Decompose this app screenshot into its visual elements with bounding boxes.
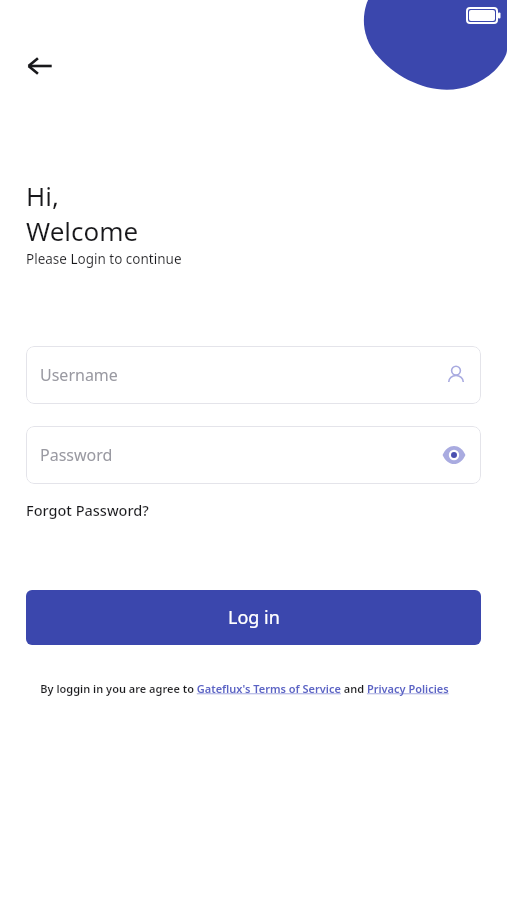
button[interactable]: By loggin in you are agree to Gateflux's… [40, 681, 467, 696]
staticText: By loggin in you are agree to Gateflux's… [40, 681, 449, 696]
staticText: Forgot Password? [26, 500, 149, 520]
staticText: Log in [228, 605, 280, 630]
staticText: Password [40, 444, 113, 466]
button[interactable]: Forgot Password? [26, 498, 149, 522]
button[interactable]: Username [26, 346, 481, 404]
staticText: Username [40, 364, 118, 386]
button[interactable]: Password [26, 426, 481, 484]
button[interactable]: Log in [26, 590, 481, 645]
staticText: Welcome [26, 213, 139, 248]
button[interactable]: Back [16, 42, 64, 90]
staticText: Please Login to continue [26, 250, 182, 268]
staticText: Hi, [26, 178, 59, 213]
button[interactable]: Show password [441, 442, 467, 468]
